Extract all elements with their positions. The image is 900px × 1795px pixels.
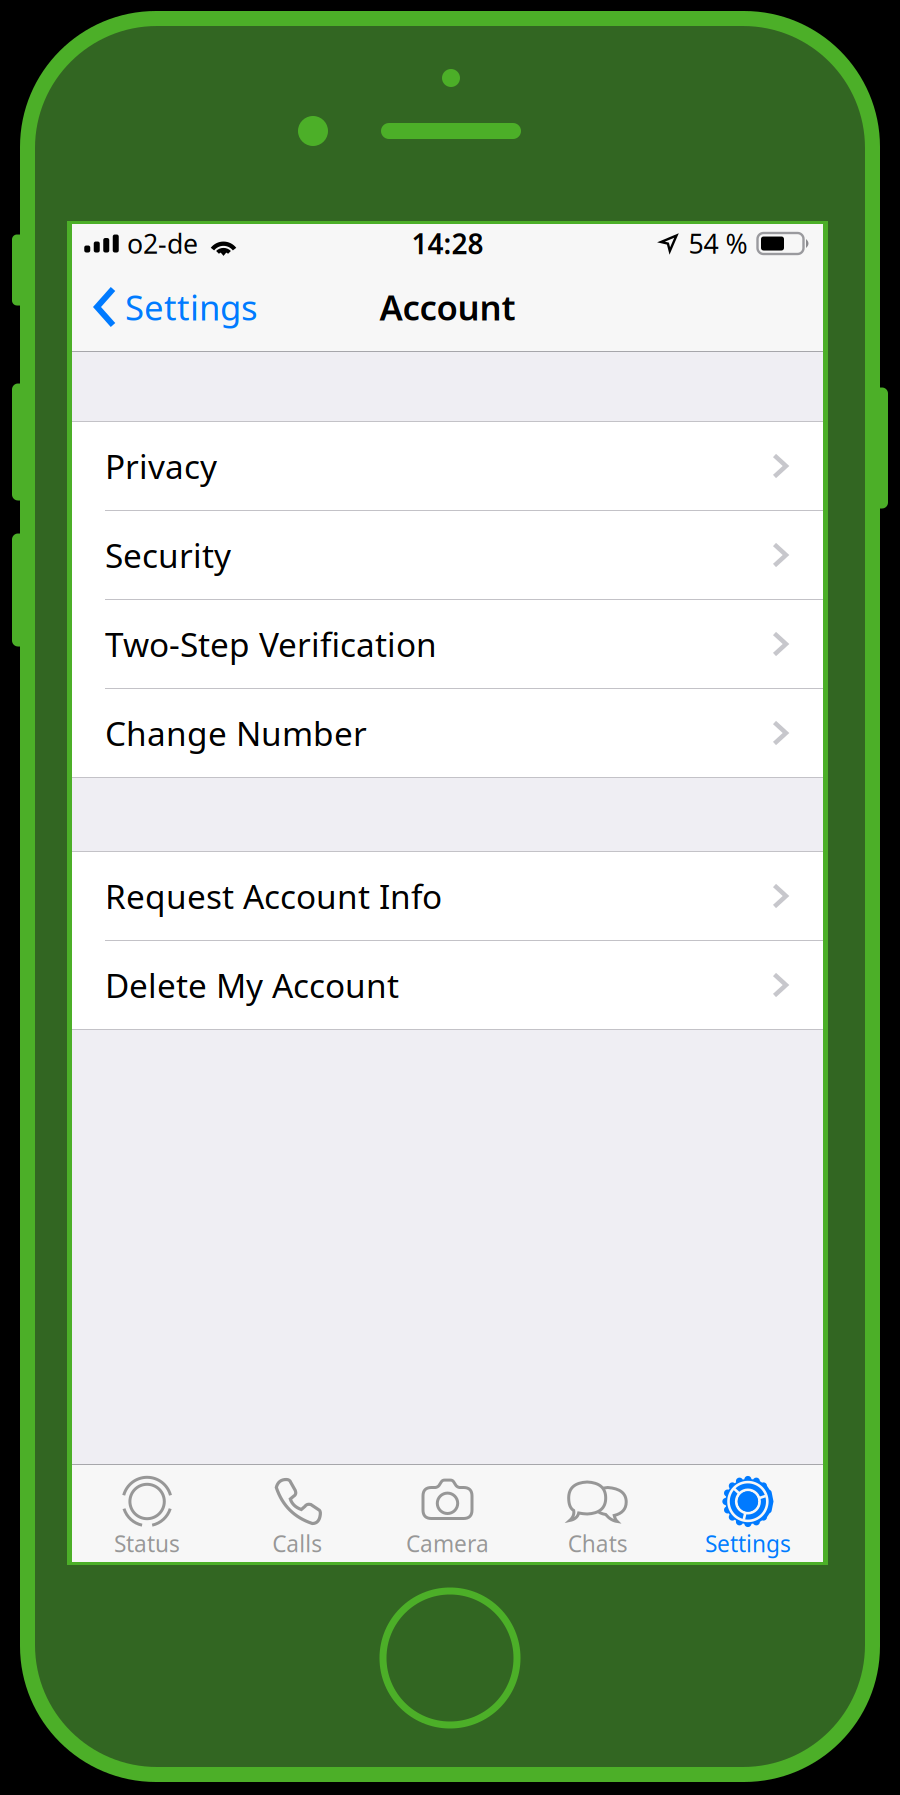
staticText: Request Account Info xyxy=(105,874,442,918)
staticText: Change Number xyxy=(105,711,367,755)
button[interactable]: Security xyxy=(72,511,823,599)
button[interactable]: Settings xyxy=(673,1465,823,1562)
staticText: o2-de xyxy=(127,226,198,261)
button[interactable]: Calls xyxy=(222,1465,372,1562)
staticText: Account xyxy=(379,284,515,330)
staticText: Camera xyxy=(406,1528,489,1558)
staticText: Settings xyxy=(125,284,258,330)
button[interactable]: Chats xyxy=(523,1465,673,1562)
button[interactable]: Two-Step Verification xyxy=(72,600,823,688)
staticText: 14:28 xyxy=(411,225,483,262)
button[interactable]: Change Number xyxy=(72,689,823,777)
staticText: Settings xyxy=(705,1528,791,1558)
button[interactable]: Privacy xyxy=(72,422,823,510)
staticText: Two-Step Verification xyxy=(105,622,437,666)
staticText: Delete My Account xyxy=(105,963,399,1007)
button[interactable]: Status xyxy=(72,1465,222,1562)
button[interactable]: Camera xyxy=(372,1465,523,1562)
button[interactable]: Settings xyxy=(72,263,272,351)
staticText: Privacy xyxy=(105,444,217,488)
staticText: Status xyxy=(114,1528,180,1558)
staticText: Chats xyxy=(568,1528,628,1558)
staticText: 54 % xyxy=(688,226,747,261)
button[interactable]: Delete My Account xyxy=(72,941,823,1029)
staticText: Calls xyxy=(272,1528,322,1558)
button[interactable]: Request Account Info xyxy=(72,852,823,940)
staticText: Security xyxy=(105,533,231,577)
